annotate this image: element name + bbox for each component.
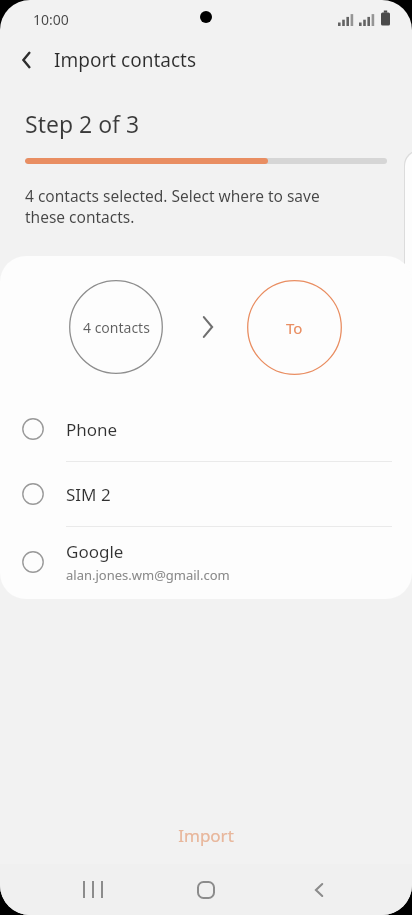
staticText: Step 2 of 3 [25,108,140,139]
button[interactable]: Phone [0,397,412,461]
staticText: 4 contacts [83,318,150,337]
staticText: 4 contacts selected. Select where to sav… [25,185,320,228]
staticText: Phone [66,418,118,441]
button[interactable]: 4 contacts [69,280,163,374]
staticText: Google [66,540,124,563]
staticText: To [286,318,303,338]
staticText: SIM 2 [66,483,111,506]
button[interactable]: Back [292,864,348,915]
button[interactable]: To [247,280,342,375]
button[interactable]: Google [0,527,412,597]
button[interactable]: Back [0,36,54,84]
button[interactable]: Recents [65,864,121,915]
staticText: alan.jones.wm@gmail.com [66,566,230,584]
button[interactable]: SIM 2 [0,462,412,526]
staticText: Import contacts [54,47,196,73]
staticText: 10:00 [33,10,69,29]
staticText: Import [178,824,234,847]
button[interactable]: Import [0,810,412,860]
button[interactable]: Home [178,864,234,915]
